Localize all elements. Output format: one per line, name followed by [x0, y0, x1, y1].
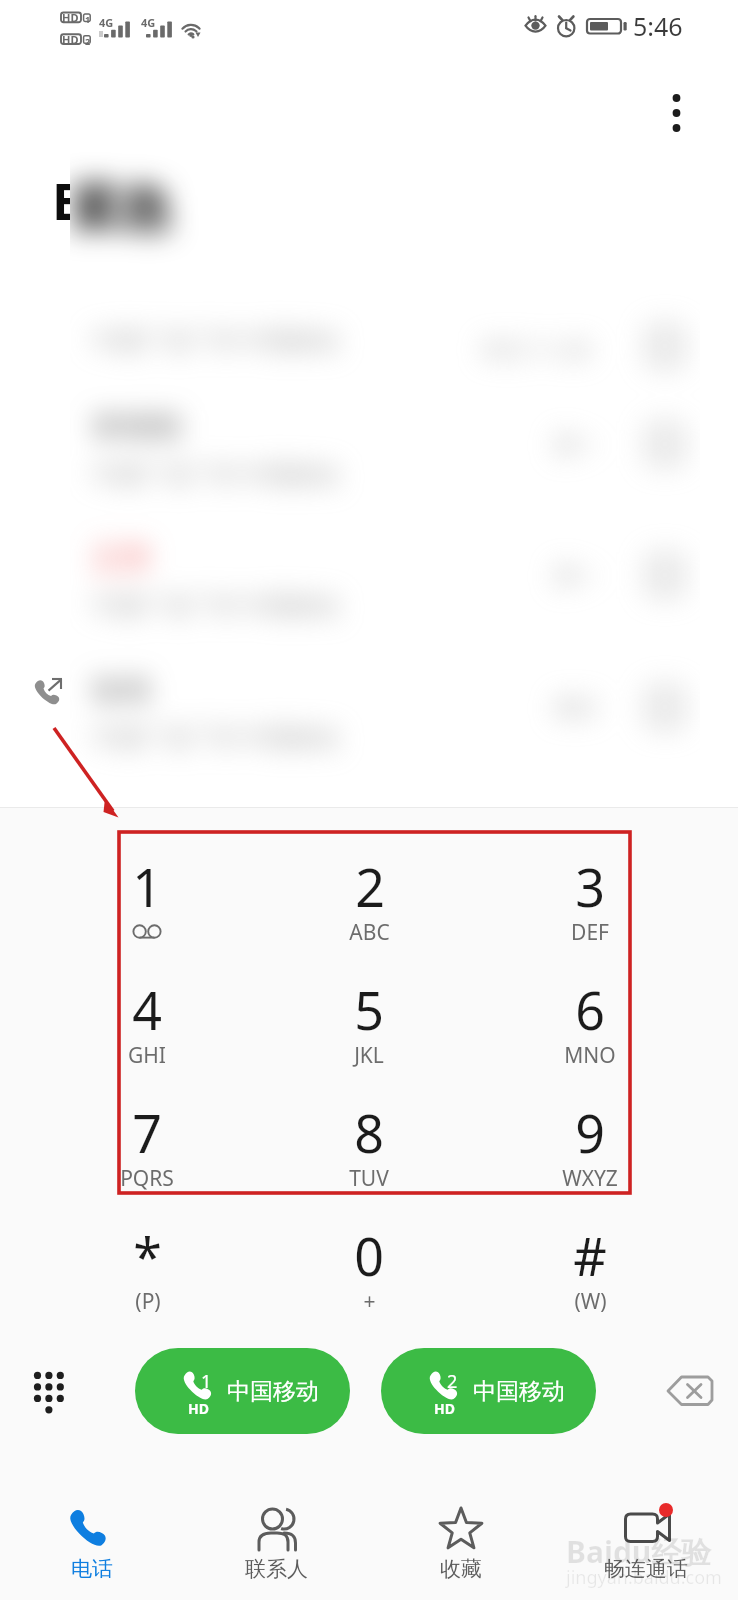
button[interactable]: 8 [264, 1097, 474, 1219]
staticText: 8 [354, 1097, 384, 1168]
button[interactable]: 电话 [0, 1452, 184, 1600]
staticText: 李明明 [91, 409, 181, 447]
button[interactable]: 3 [485, 851, 695, 973]
staticText: 3 [575, 851, 605, 922]
button[interactable]: 1 [135, 1348, 350, 1434]
button[interactable]: 0 [264, 1220, 474, 1342]
staticText: Baidu经验 [566, 1531, 712, 1572]
staticText: 中国移动 [473, 1377, 565, 1406]
staticText: (P) [135, 1287, 161, 1316]
staticText: 2 [355, 851, 385, 922]
staticText: MNO [564, 1041, 616, 1070]
staticText: HD [62, 10, 79, 25]
staticText: 5:46 [633, 9, 683, 43]
staticText: 1 [201, 1369, 212, 1394]
button[interactable]: 4 [42, 974, 252, 1096]
staticText: JKL [354, 1041, 384, 1070]
button[interactable]: 畅连通话 [553, 1452, 738, 1600]
staticText: * [133, 1220, 162, 1291]
staticText: HD [434, 1399, 455, 1418]
staticText: 紧急 [70, 176, 172, 242]
button[interactable]: Delete [650, 1356, 730, 1426]
staticText: 0 [354, 1220, 384, 1291]
staticText: ABC [349, 918, 390, 947]
button[interactable]: 5 [264, 974, 474, 1096]
button[interactable]: 7 [42, 1097, 252, 1219]
staticText: 4 [132, 974, 162, 1045]
staticText: 中国广东广州 中国移动 [92, 323, 339, 356]
staticText: 4G [141, 15, 156, 30]
staticText: 1 [132, 851, 162, 922]
staticText: 联系人 [245, 1556, 308, 1582]
button[interactable]: 2 [264, 851, 474, 973]
staticText: (W) [574, 1287, 607, 1316]
staticText: 收藏 [440, 1556, 482, 1582]
staticText: 中国移动 [227, 1377, 319, 1406]
staticText: 中国广东广州 中国移动 [92, 720, 339, 753]
button[interactable]: # [485, 1220, 695, 1342]
staticText: 2 [85, 35, 91, 47]
button[interactable]: More options [640, 74, 716, 152]
staticText: PQRS [120, 1164, 174, 1193]
staticText: 畅连通话 [604, 1556, 688, 1582]
button[interactable]: * [42, 1220, 252, 1342]
staticText: 6 [575, 974, 605, 1045]
button[interactable]: 6 [485, 974, 695, 1096]
staticText: 9 [575, 1097, 605, 1168]
staticText: # [573, 1220, 607, 1291]
button[interactable]: 2 [381, 1348, 596, 1434]
staticText: WXYZ [562, 1164, 618, 1193]
staticText: HD [188, 1399, 209, 1418]
staticText: 7 [132, 1097, 162, 1168]
staticText: HD [62, 32, 79, 47]
staticText: 张伟 [91, 672, 151, 710]
staticText: DEF [571, 918, 609, 947]
staticText: jingyan.baidu.com [566, 1565, 722, 1590]
staticText: 电话 [71, 1556, 113, 1582]
staticText: 2 [447, 1369, 458, 1394]
button[interactable]: 收藏 [368, 1452, 553, 1600]
button[interactable]: 联系人 [184, 1452, 368, 1600]
staticText: 5 [354, 974, 384, 1045]
staticText: TUV [349, 1164, 389, 1193]
staticText: 1 [85, 13, 91, 25]
staticText: E [52, 167, 70, 235]
button[interactable]: 1 [42, 851, 252, 973]
staticText: 王芳 [91, 540, 151, 578]
button[interactable]: 9 [485, 1097, 695, 1219]
button[interactable]: Keypad [10, 1344, 88, 1438]
staticText: 4G [99, 15, 114, 30]
staticText: + [363, 1287, 376, 1316]
staticText: GHI [128, 1041, 166, 1070]
staticText: 中国广东广州 中国移动 [92, 457, 339, 490]
staticText: 中国广东广州 中国移动 [92, 588, 339, 621]
